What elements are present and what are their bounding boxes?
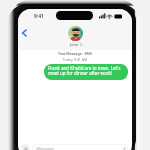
button[interactable]: iMessage [32, 144, 128, 150]
staticText: iMessage [36, 146, 54, 150]
staticText: 9:41 [34, 13, 44, 20]
staticText: Today 9:41 AM [18, 57, 132, 62]
staticText: Text Message · SMS [18, 51, 132, 56]
button[interactable]: Add attachment [21, 144, 30, 150]
button[interactable]: John [68, 26, 83, 47]
staticText: Frank and Khalid are in town. Let's meet… [48, 65, 124, 77]
button[interactable]: Frank and Khalid are in town. Let's meet… [44, 64, 128, 80]
staticText: John [70, 42, 79, 47]
button[interactable]: Back [19, 27, 30, 39]
